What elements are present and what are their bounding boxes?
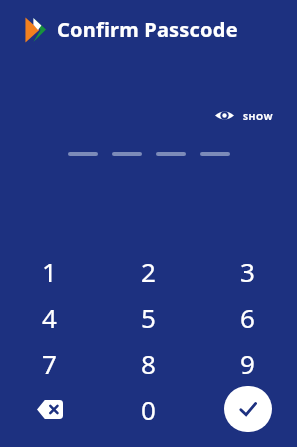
other: Show passcode — [215, 109, 234, 122]
button[interactable]: 9 — [198, 340, 297, 386]
button[interactable]: 0 — [99, 386, 198, 432]
staticText: 3 — [240, 254, 255, 289]
button[interactable]: 3 — [198, 248, 297, 294]
button[interactable]: 4 — [0, 294, 99, 340]
staticText: SHOW — [243, 110, 273, 122]
staticText: 7 — [42, 346, 57, 381]
staticText: 1 — [42, 254, 57, 289]
staticText: 8 — [141, 346, 156, 381]
button[interactable]: 2 — [99, 248, 198, 294]
staticText: 6 — [240, 300, 255, 335]
staticText: Confirm Passcode — [57, 16, 238, 43]
staticText: 5 — [141, 300, 156, 335]
button[interactable]: 6 — [198, 294, 297, 340]
staticText: 0 — [141, 392, 156, 427]
button[interactable]: Show passcode — [211, 105, 277, 126]
button[interactable]: Backspace — [0, 386, 99, 432]
other: Backspace — [37, 400, 63, 419]
button[interactable]: 1 — [0, 248, 99, 294]
staticText: 2 — [141, 254, 156, 289]
staticText: 4 — [42, 300, 57, 335]
other: App logo — [25, 17, 46, 43]
staticText: 9 — [240, 346, 255, 381]
button[interactable]: 7 — [0, 340, 99, 386]
button[interactable]: Confirm — [224, 386, 272, 432]
button[interactable]: 8 — [99, 340, 198, 386]
button[interactable]: 5 — [99, 294, 198, 340]
